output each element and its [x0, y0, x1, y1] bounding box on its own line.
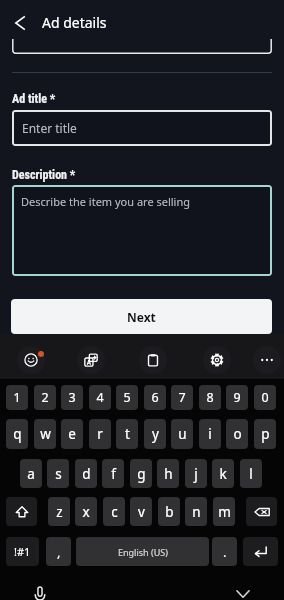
- staticText: u: [178, 425, 187, 443]
- button[interactable]: e: [61, 419, 83, 449]
- button[interactable]: v: [130, 497, 152, 526]
- staticText: Next: [127, 309, 156, 325]
- button[interactable]: z: [48, 497, 70, 526]
- staticText: a: [27, 465, 35, 483]
- button[interactable]: f: [102, 459, 124, 488]
- staticText: r: [97, 425, 103, 443]
- button[interactable]: English (US): [76, 537, 209, 566]
- staticText: n: [192, 503, 201, 521]
- staticText: b: [165, 503, 174, 521]
- button[interactable]: Hide keyboard: [229, 580, 257, 600]
- button[interactable]: w: [34, 419, 56, 449]
- button[interactable]: 2: [34, 385, 56, 410]
- button[interactable]: q: [6, 419, 28, 449]
- button[interactable]: n: [185, 497, 207, 526]
- staticText: 1: [13, 389, 21, 406]
- button[interactable]: Next: [11, 299, 272, 334]
- button[interactable]: b: [158, 497, 180, 526]
- button[interactable]: 4: [89, 385, 111, 410]
- button[interactable]: !#1: [6, 537, 39, 566]
- button[interactable]: Settings: [203, 346, 231, 374]
- button[interactable]: 0: [254, 385, 276, 410]
- button[interactable]: a: [20, 459, 42, 488]
- button[interactable]: Emoji: [17, 346, 45, 374]
- staticText: w: [40, 425, 51, 443]
- staticText: .: [223, 543, 227, 561]
- button[interactable]: k: [212, 459, 234, 488]
- button[interactable]: 9: [226, 385, 248, 410]
- staticText: c: [111, 503, 118, 521]
- staticText: Ad details: [42, 13, 107, 32]
- button[interactable]: Voice input: [26, 580, 54, 600]
- staticText: i: [208, 425, 212, 443]
- button[interactable]: Backspace: [246, 497, 277, 526]
- staticText: 3: [68, 389, 76, 406]
- staticText: 2: [41, 389, 49, 406]
- button[interactable]: 8: [199, 385, 221, 410]
- button[interactable]: 7: [171, 385, 193, 410]
- button[interactable]: r: [89, 419, 111, 449]
- button[interactable]: Clipboard: [139, 346, 167, 374]
- staticText: English (US): [118, 546, 168, 558]
- button[interactable]: g: [130, 459, 152, 488]
- staticText: Enter title: [22, 120, 77, 136]
- button[interactable]: d: [75, 459, 97, 488]
- button[interactable]: m: [213, 497, 235, 526]
- staticText: y: [152, 425, 159, 443]
- staticText: d: [82, 465, 91, 483]
- button[interactable]: 6: [144, 385, 166, 410]
- staticText: ,: [57, 543, 61, 561]
- staticText: f: [111, 465, 116, 483]
- staticText: !#1: [14, 544, 31, 559]
- staticText: p: [261, 425, 270, 443]
- button[interactable]: h: [157, 459, 179, 488]
- staticText: l: [249, 465, 253, 483]
- staticText: q: [13, 425, 22, 443]
- button[interactable]: Translate: [77, 346, 105, 374]
- button[interactable]: j: [185, 459, 207, 488]
- staticText: v: [138, 503, 145, 521]
- button[interactable]: Enter title: [12, 110, 272, 146]
- button[interactable]: Enter: [243, 537, 278, 566]
- button[interactable]: Shift: [6, 497, 37, 526]
- staticText: o: [233, 425, 242, 443]
- staticText: Description *: [12, 168, 76, 182]
- staticText: t: [125, 425, 130, 443]
- staticText: Describe the item you are selling: [21, 194, 191, 209]
- button[interactable]: c: [103, 497, 125, 526]
- button[interactable]: .: [212, 537, 237, 566]
- button[interactable]: p: [254, 419, 276, 449]
- button[interactable]: 1: [6, 385, 28, 410]
- staticText: Ad title *: [12, 92, 56, 106]
- button[interactable]: t: [116, 419, 138, 449]
- button[interactable]: More options: [253, 346, 281, 374]
- button[interactable]: o: [226, 419, 248, 449]
- button[interactable]: Describe the item you are selling: [12, 185, 272, 276]
- button[interactable]: y: [144, 419, 166, 449]
- staticText: 5: [123, 389, 131, 406]
- button[interactable]: u: [171, 419, 193, 449]
- staticText: 6: [151, 389, 159, 406]
- button[interactable]: l: [240, 459, 262, 488]
- staticText: 7: [178, 389, 186, 406]
- staticText: z: [56, 503, 63, 521]
- staticText: g: [137, 465, 146, 483]
- staticText: 0: [261, 389, 269, 406]
- button[interactable]: s: [47, 459, 69, 488]
- button[interactable]: 5: [116, 385, 138, 410]
- staticText: s: [55, 465, 62, 483]
- button[interactable]: Back: [5, 8, 35, 38]
- staticText: 9: [233, 389, 241, 406]
- staticText: m: [218, 503, 231, 521]
- button[interactable]: x: [75, 497, 97, 526]
- staticText: k: [219, 465, 227, 483]
- staticText: j: [194, 465, 198, 483]
- button[interactable]: ,: [46, 537, 71, 566]
- staticText: e: [68, 425, 76, 443]
- button[interactable]: 3: [61, 385, 83, 410]
- staticText: 4: [96, 389, 104, 406]
- button[interactable]: i: [199, 419, 221, 449]
- staticText: 8: [206, 389, 214, 406]
- staticText: x: [82, 503, 90, 521]
- staticText: h: [164, 465, 173, 483]
